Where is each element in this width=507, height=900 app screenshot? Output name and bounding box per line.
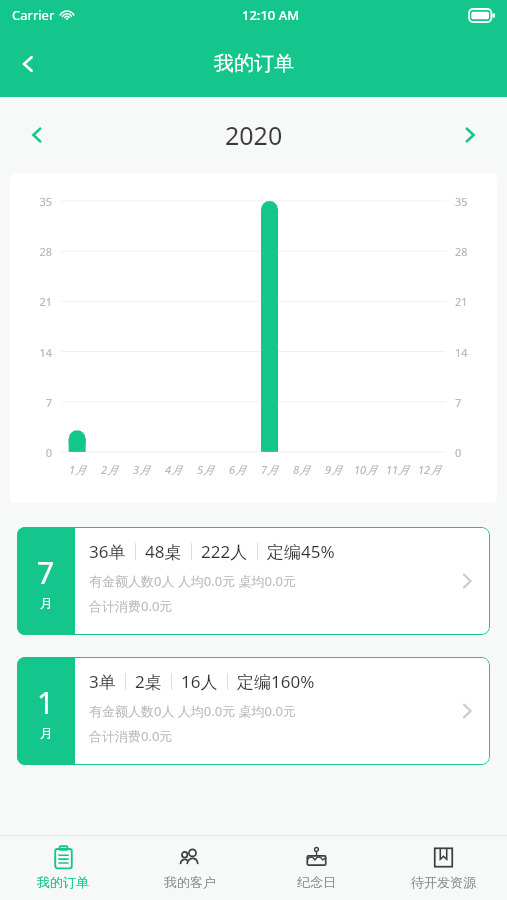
staticText: 1 [37, 682, 55, 723]
staticText: 4月 [165, 462, 183, 477]
staticText: 1月 [69, 462, 87, 477]
staticText: 7 [16, 395, 52, 410]
staticText: 定编160% [237, 670, 315, 693]
staticText: 10月 [354, 462, 378, 477]
staticText: 待开发资源 [411, 874, 476, 890]
staticText: 月 [40, 595, 53, 611]
staticText: 有金额人数0人 人均0.0元 桌均0.0元 [89, 572, 296, 590]
staticText: 7 [37, 552, 55, 593]
button[interactable]: 我的订单 [0, 836, 126, 900]
button[interactable]: Previous year [14, 112, 60, 158]
staticText: 14 [455, 345, 491, 360]
staticText: 2月 [101, 462, 119, 477]
staticText: 月 [40, 725, 53, 741]
staticText: 222人 [201, 540, 248, 563]
button[interactable]: 7 [17, 527, 490, 635]
staticText: 12:10 AM [242, 6, 300, 24]
staticText: 8月 [293, 462, 311, 477]
staticText: 定编45% [267, 540, 335, 563]
button[interactable]: Back [4, 40, 52, 88]
staticText: 7 [455, 395, 491, 410]
staticText: 48桌 [145, 540, 182, 563]
staticText: 36单 [89, 540, 126, 563]
staticText: 35 [16, 194, 52, 209]
staticText: 有金额人数0人 人均0.0元 桌均0.0元 [89, 702, 296, 720]
staticText: 7月 [261, 462, 279, 477]
staticText: 2020 [225, 118, 283, 152]
button[interactable]: 待开发资源 [380, 836, 507, 900]
button[interactable]: 我的客户 [126, 836, 253, 900]
staticText: 合计消费0.0元 [89, 597, 173, 615]
staticText: 我的客户 [164, 874, 216, 890]
staticText: 14 [16, 345, 52, 360]
staticText: 28 [455, 244, 491, 259]
staticText: 我的订单 [37, 874, 89, 890]
staticText: 合计消费0.0元 [89, 727, 173, 745]
staticText: Carrier [12, 6, 55, 24]
staticText: 0 [455, 445, 491, 460]
staticText: 28 [16, 244, 52, 259]
staticText: 21 [16, 294, 52, 309]
staticText: 21 [455, 294, 491, 309]
staticText: 11月 [386, 462, 410, 477]
staticText: 9月 [325, 462, 343, 477]
staticText: 2桌 [135, 670, 162, 693]
staticText: 35 [455, 194, 491, 209]
staticText: 纪念日 [297, 874, 336, 890]
staticText: 12月 [418, 462, 442, 477]
staticText: 5月 [197, 462, 215, 477]
staticText: 6月 [229, 462, 247, 477]
button[interactable]: 1 [17, 657, 490, 765]
button[interactable]: 纪念日 [253, 836, 380, 900]
staticText: 3月 [133, 462, 151, 477]
staticText: 3单 [89, 670, 116, 693]
staticText: 16人 [181, 670, 218, 693]
staticText: 我的订单 [214, 51, 294, 76]
button[interactable]: Next year [447, 112, 493, 158]
staticText: 0 [16, 445, 52, 460]
